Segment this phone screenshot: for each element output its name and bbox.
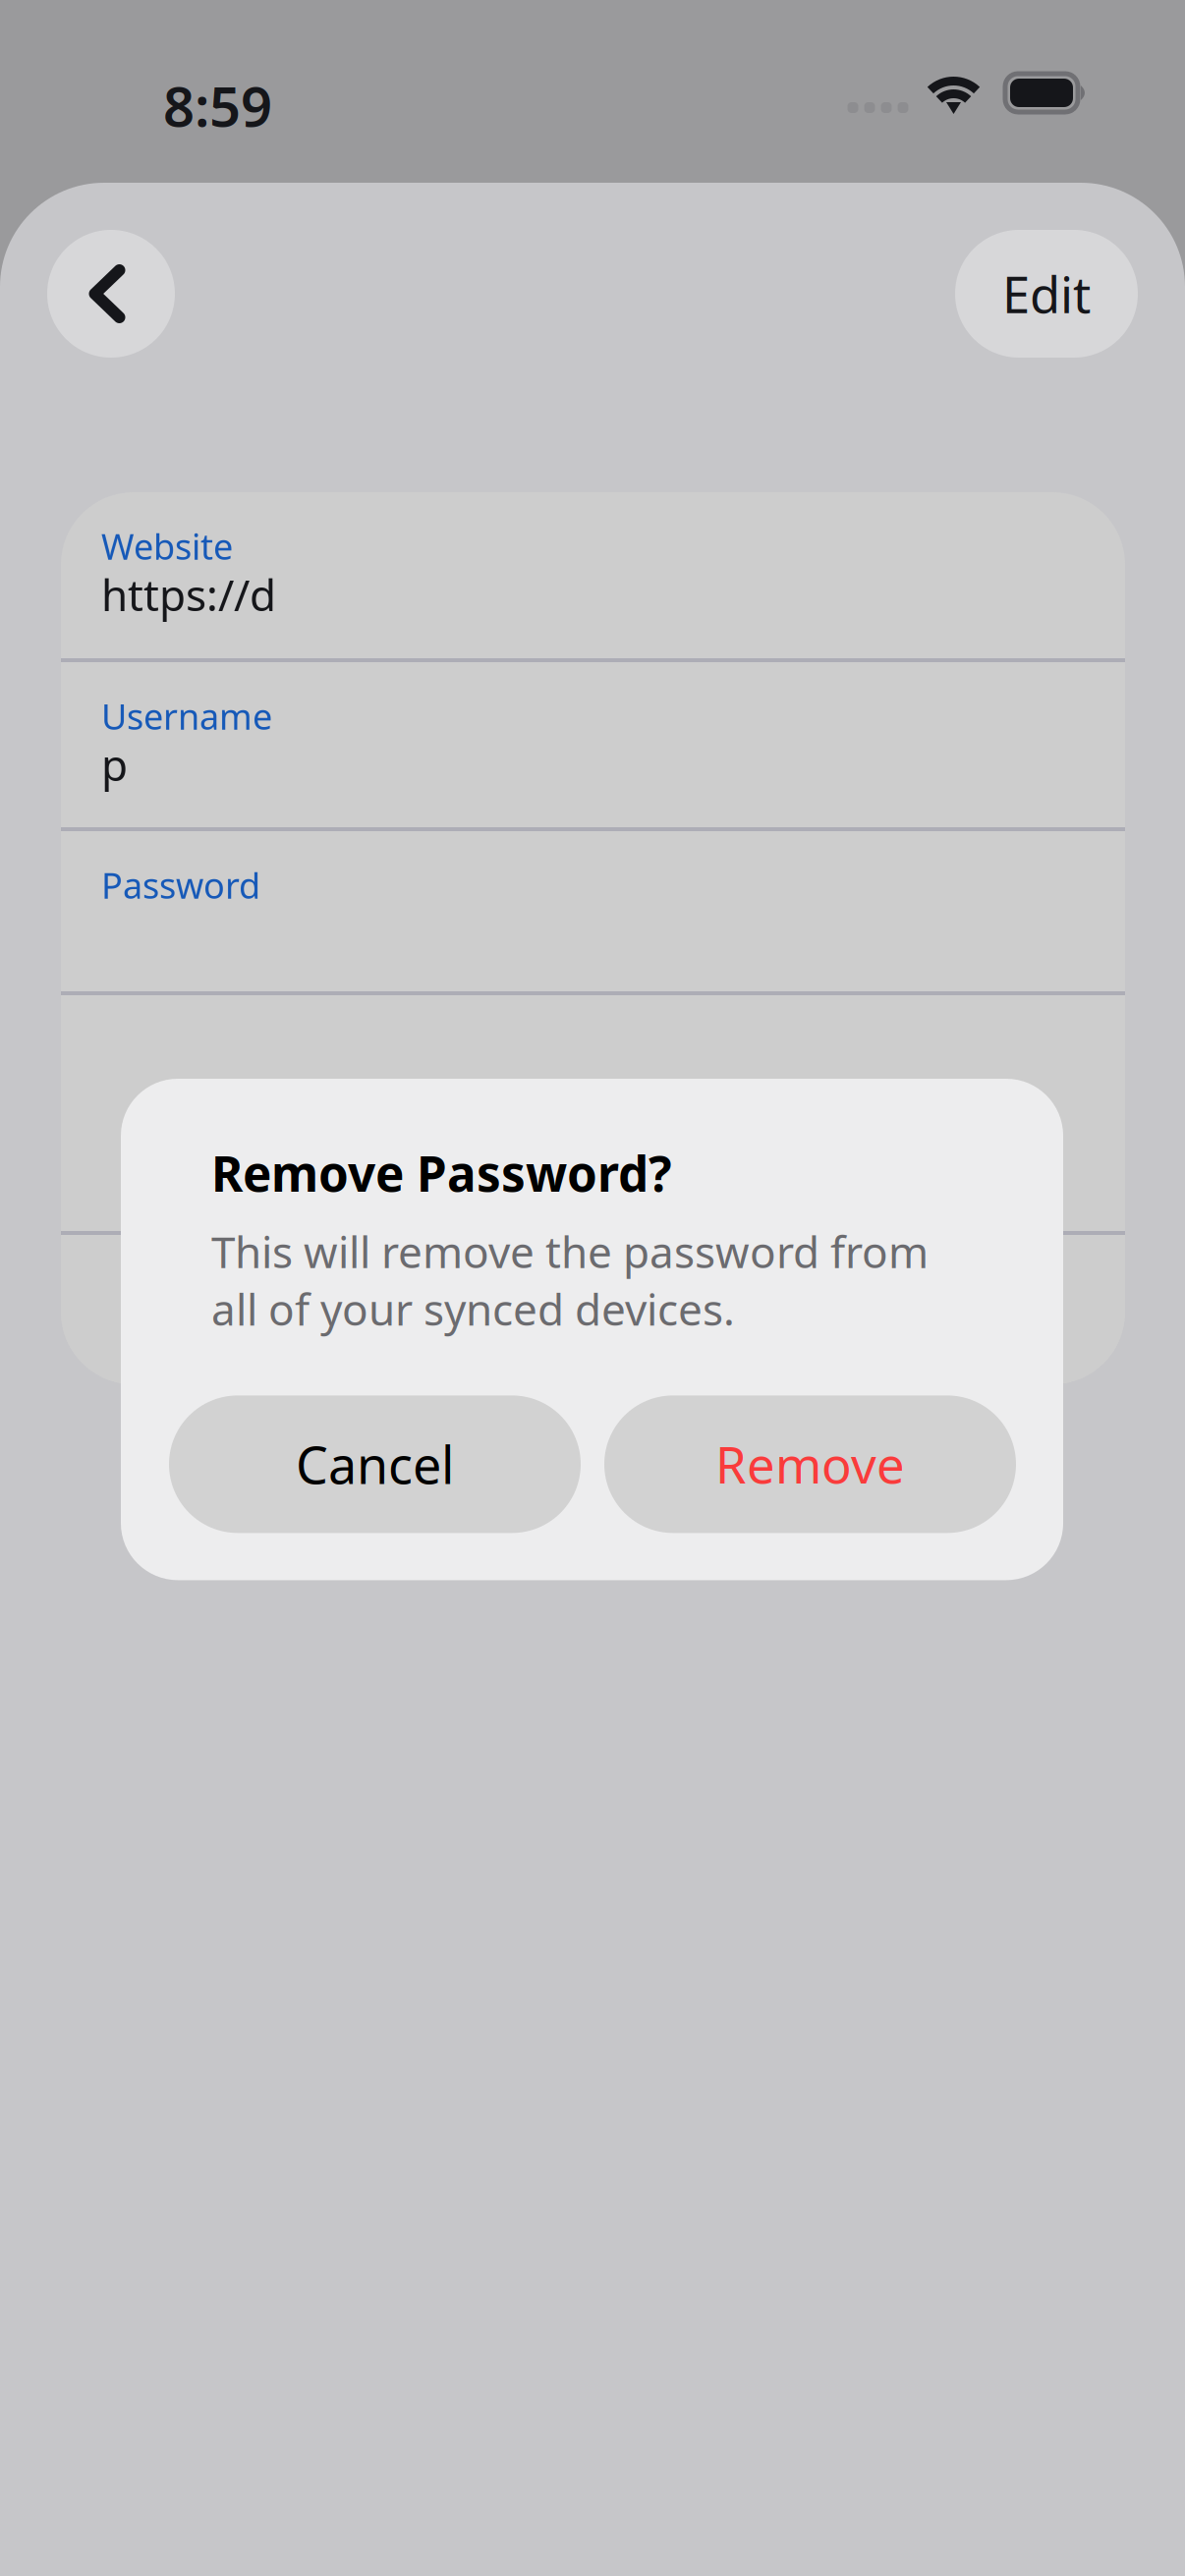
- button[interactable]: Remove: [604, 1395, 1016, 1533]
- staticText: 8:59: [163, 69, 272, 142]
- staticText: Cancel: [296, 1430, 454, 1498]
- staticText: Remove: [715, 1431, 905, 1497]
- button[interactable]: Username: [61, 662, 1125, 827]
- staticText: p: [101, 736, 128, 793]
- button[interactable]: Back: [47, 230, 175, 358]
- staticText: Remove Password?: [211, 1141, 672, 1205]
- button[interactable]: Website: [61, 492, 1125, 658]
- staticText: Password: [101, 862, 260, 909]
- button[interactable]: Edit: [955, 230, 1138, 358]
- button[interactable]: Row: [61, 1235, 1125, 1384]
- staticText: This will remove the password from all o…: [211, 1223, 929, 1338]
- staticText: Username: [101, 693, 272, 740]
- staticText: Website: [101, 523, 233, 570]
- button[interactable]: Password: [61, 831, 1125, 991]
- staticText: https://d: [101, 566, 276, 623]
- staticText: Edit: [1002, 261, 1091, 327]
- button[interactable]: Row: [61, 995, 1125, 1231]
- button[interactable]: Cancel: [169, 1395, 581, 1533]
